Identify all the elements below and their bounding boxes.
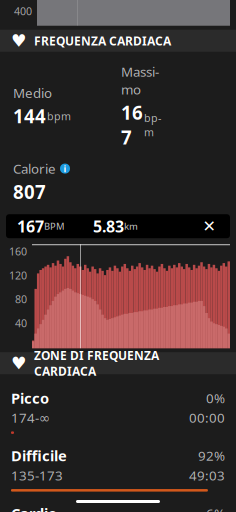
staticText: 40 [15, 316, 27, 330]
staticText: bpm [47, 109, 71, 123]
staticText: Massimo [121, 63, 159, 98]
staticText: 167 [121, 100, 143, 150]
staticText: 49:03 [189, 466, 225, 484]
staticText: 80 [15, 292, 27, 306]
staticText: Medio [13, 84, 52, 102]
staticText: FREQUENZA CARDIACA [34, 33, 171, 49]
staticText: 00:00 [189, 409, 225, 426]
staticText: km [124, 220, 138, 232]
staticText: 92% [198, 447, 225, 464]
staticText: i [63, 162, 66, 175]
staticText: 5.83 [93, 216, 124, 237]
staticText: ZONE DI FREQUENZA CARDIACA [34, 347, 159, 379]
staticText: 120 [9, 268, 27, 282]
staticText: 400 [14, 4, 32, 18]
button[interactable]: Informazioni calorie [60, 164, 70, 174]
staticText: ✕ [202, 217, 215, 235]
staticText: Picco [11, 388, 49, 408]
button[interactable]: Picco [0, 382, 236, 440]
staticText: ♥ [11, 31, 27, 51]
staticText: 167 [17, 216, 44, 237]
button[interactable]: Difficile [0, 440, 236, 498]
button[interactable]: Cardio [0, 498, 236, 512]
staticText: ♥ [11, 353, 27, 373]
staticText: 807 [13, 179, 46, 204]
staticText: 160 [9, 244, 27, 258]
staticText: Cardio [11, 504, 57, 512]
staticText: 6% [206, 504, 225, 512]
staticText: Difficile [11, 446, 67, 465]
button[interactable]: ‹ [0, 0, 84, 7]
staticText: Calorie [13, 160, 56, 177]
staticText: bpm [144, 111, 161, 139]
staticText: 174-∞ [11, 409, 50, 426]
staticText: 135-173 [11, 466, 63, 484]
staticText: BPM [44, 220, 65, 232]
staticText: 0% [206, 389, 225, 407]
staticText: 144 [13, 104, 46, 128]
button[interactable]: Chiudi [199, 216, 219, 236]
